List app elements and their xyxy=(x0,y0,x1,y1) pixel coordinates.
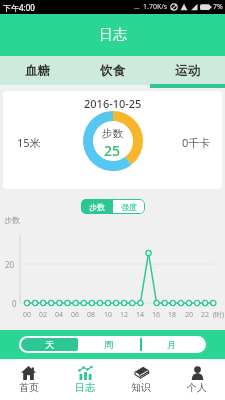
button[interactable]: 月 xyxy=(141,336,203,353)
button[interactable]: 强度 xyxy=(113,199,145,214)
staticText: 18 xyxy=(168,310,177,320)
staticText: 月 xyxy=(167,339,177,351)
button[interactable]: 天 xyxy=(21,338,78,351)
staticText: 步数 xyxy=(4,215,20,225)
button[interactable]: 知识 xyxy=(113,359,169,400)
button[interactable]: 日志 xyxy=(57,359,113,400)
staticText: 2016-10-25 xyxy=(84,96,142,111)
staticText: 00 xyxy=(23,310,32,320)
staticText: 1.70K/s xyxy=(143,2,168,12)
staticText: 天 xyxy=(45,339,55,351)
staticText: 步数 xyxy=(102,127,123,140)
button[interactable]: 步数 xyxy=(81,199,113,214)
staticText: 饮食 xyxy=(100,63,125,79)
staticText: 10 xyxy=(104,310,113,320)
staticText: 7% xyxy=(213,2,223,12)
staticText: 12 xyxy=(120,310,129,320)
staticText: 0 xyxy=(12,298,17,309)
staticText: 20 xyxy=(5,259,15,270)
staticText: 06 xyxy=(71,310,80,320)
button[interactable]: 饮食 xyxy=(75,56,150,88)
staticText: 个人 xyxy=(187,381,207,394)
button[interactable]: 首页 xyxy=(0,359,57,400)
staticText: 08 xyxy=(87,310,96,320)
staticText: 首页 xyxy=(19,381,39,394)
staticText: 16 xyxy=(152,310,161,320)
staticText: (时) xyxy=(213,310,225,320)
button[interactable]: 周 xyxy=(78,336,140,353)
staticText: 日志 xyxy=(99,26,127,44)
staticText: 血糖 xyxy=(25,63,50,79)
staticText: 0千卡 xyxy=(182,135,211,150)
staticText: 运动 xyxy=(175,63,200,79)
button[interactable]: 运动 xyxy=(150,56,225,88)
staticText: 02 xyxy=(39,310,48,320)
staticText: 知识 xyxy=(131,381,151,394)
staticText: 15米 xyxy=(17,135,41,150)
staticText: ... xyxy=(134,2,140,12)
staticText: 步数 xyxy=(89,202,105,212)
button[interactable]: 个人 xyxy=(169,359,225,400)
staticText: 14 xyxy=(136,310,145,320)
staticText: 下午4:00 xyxy=(3,2,35,13)
button[interactable]: 血糖 xyxy=(0,56,75,88)
staticText: 20 xyxy=(185,310,194,320)
staticText: 强度 xyxy=(121,202,137,212)
staticText: 25 xyxy=(104,141,121,160)
staticText: 日志 xyxy=(75,381,95,394)
staticText: 04 xyxy=(55,310,64,320)
staticText: 周 xyxy=(104,339,114,351)
staticText: 22 xyxy=(201,310,210,320)
